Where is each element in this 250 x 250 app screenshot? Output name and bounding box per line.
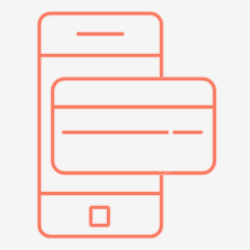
button[interactable]: Mobile payment: phone with credit card (0, 0, 250, 250)
